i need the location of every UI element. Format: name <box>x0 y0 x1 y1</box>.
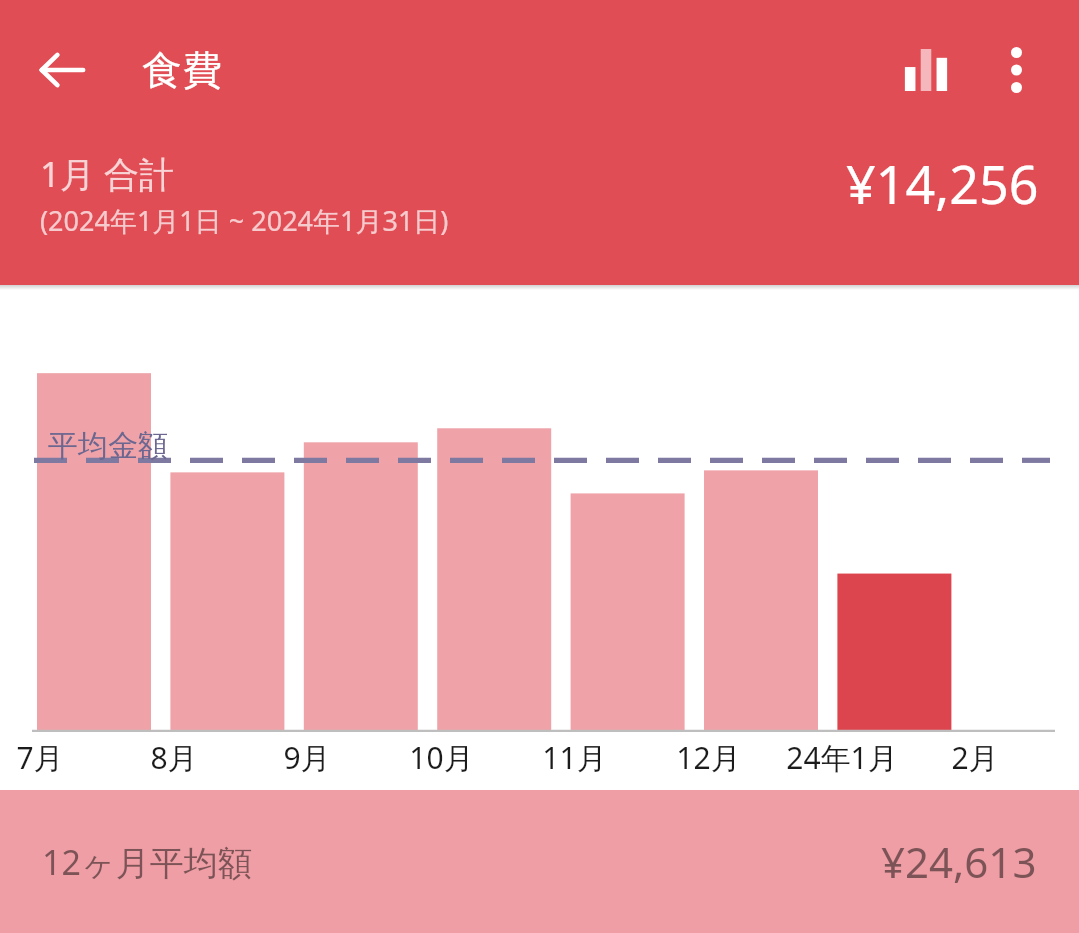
button[interactable]: Chart <box>887 31 965 109</box>
button[interactable]: More options <box>977 31 1055 109</box>
staticText: 24年1月 <box>786 737 898 778</box>
button[interactable]: Back <box>24 32 100 108</box>
staticText: 12月 <box>676 737 741 778</box>
staticText: 1月 合計 <box>40 150 175 198</box>
staticText: 12ヶ月平均額 <box>42 839 252 885</box>
staticText: 11月 <box>542 737 607 778</box>
staticText: 10月 <box>409 737 474 778</box>
staticText: ¥24,613 <box>881 833 1037 890</box>
staticText: 9月 <box>283 737 331 778</box>
staticText: (2024年1月1日 ~ 2024年1月31日) <box>40 202 449 239</box>
staticText: 8月 <box>150 737 198 778</box>
button[interactable]: 12ヶ月平均額 <box>0 790 1079 933</box>
staticText: 7月 <box>16 737 64 778</box>
staticText: 2月 <box>951 737 999 778</box>
staticText: 食費 <box>142 45 222 95</box>
staticText: ¥14,256 <box>846 148 1039 219</box>
staticText: 平均金額 <box>48 427 168 465</box>
